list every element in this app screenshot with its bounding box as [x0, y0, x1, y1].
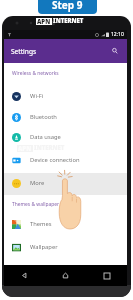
staticText: Themes & wallpaper — [12, 201, 59, 208]
button[interactable]: Home — [45, 265, 86, 286]
staticText: Bluetooth — [30, 113, 57, 121]
staticText: APN — [18, 145, 32, 152]
button[interactable]: Device connection — [4, 149, 127, 171]
button[interactable]: Search — [108, 44, 122, 58]
staticText: APN — [37, 18, 51, 25]
staticText: INTERNET — [34, 144, 65, 152]
button[interactable]: More — [4, 172, 127, 194]
staticText: Data usage — [30, 133, 61, 141]
staticText: Wireless & networks — [12, 70, 59, 77]
button[interactable]: Bluetooth — [4, 106, 127, 128]
button[interactable]: Data usage — [4, 126, 127, 148]
button[interactable]: Recent apps — [86, 265, 127, 286]
staticText: Settings — [11, 47, 37, 56]
staticText: Device connection — [30, 156, 80, 164]
staticText: INTERNET — [53, 17, 84, 25]
button[interactable]: Wi-Fi — [4, 85, 127, 107]
staticText: Wi-Fi — [30, 92, 44, 100]
button[interactable]: Wallpaper — [4, 236, 127, 258]
staticText: Wallpaper — [30, 243, 58, 251]
staticText: More — [30, 179, 45, 187]
button[interactable]: Themes — [4, 213, 127, 235]
button[interactable]: Step 9 — [38, 0, 97, 14]
staticText: Step 9 — [52, 0, 83, 12]
staticText: Themes — [30, 220, 52, 228]
staticText: 12:10 — [111, 31, 124, 38]
button[interactable]: Back — [4, 265, 45, 286]
